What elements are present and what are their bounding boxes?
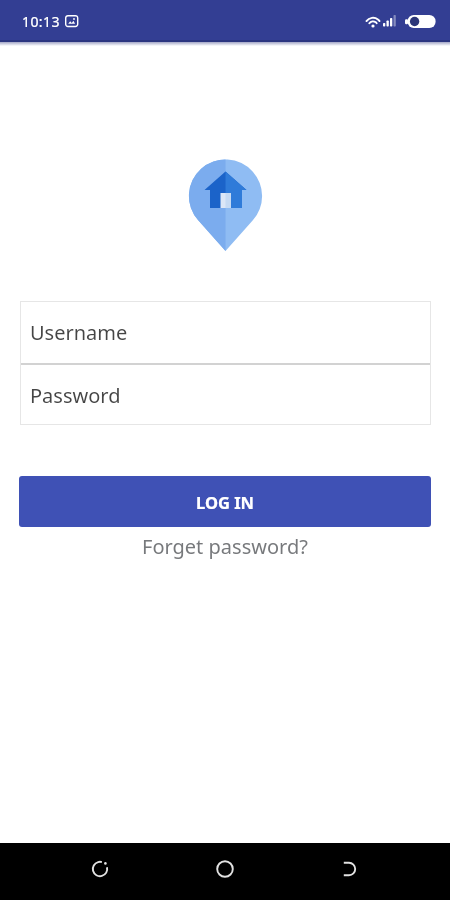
button[interactable]: LOG IN (19, 476, 431, 527)
button[interactable]: Username (20, 301, 431, 363)
button[interactable] (334, 854, 364, 884)
button[interactable]: Forget password? (142, 533, 308, 560)
button[interactable] (85, 854, 115, 884)
staticText: Password (30, 382, 121, 409)
staticText: LOG IN (196, 491, 255, 513)
button[interactable]: Password (20, 365, 431, 425)
staticText: Username (30, 319, 128, 346)
staticText: 10:13 (22, 12, 60, 31)
button[interactable] (210, 854, 240, 884)
